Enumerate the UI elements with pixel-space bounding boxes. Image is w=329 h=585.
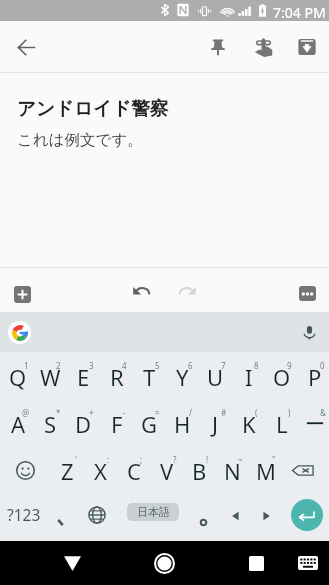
button[interactable]: W	[32, 353, 65, 399]
staticText: Q	[9, 362, 27, 392]
staticText: これは例文です。	[17, 130, 143, 150]
staticText: 6	[188, 360, 193, 371]
staticText: H	[174, 409, 191, 439]
button[interactable]: F	[98, 400, 131, 446]
staticText: 5	[155, 360, 160, 371]
button[interactable]: R	[98, 353, 131, 399]
button[interactable]: U	[197, 353, 230, 399]
button[interactable]: K	[230, 400, 263, 446]
staticText: 日本語	[137, 505, 170, 519]
staticText: X	[94, 456, 107, 486]
button[interactable]: S	[32, 400, 65, 446]
button[interactable]: Enter	[282, 493, 329, 539]
staticText: Y	[176, 362, 189, 392]
button[interactable]: P	[296, 353, 329, 399]
staticText: 8	[254, 360, 259, 371]
staticText: B	[192, 456, 207, 486]
staticText: 0	[320, 360, 325, 371]
staticText: (	[255, 407, 258, 418]
staticText: '	[75, 454, 77, 465]
button[interactable]: G	[131, 400, 164, 446]
button[interactable]: Redo	[169, 272, 205, 308]
button[interactable]: Archive	[287, 27, 327, 67]
staticText: 7	[221, 360, 226, 371]
button[interactable]: Recent apps	[232, 541, 280, 585]
button[interactable]: Switch keyboard	[288, 541, 329, 585]
staticText: E	[77, 362, 90, 392]
staticText: )	[288, 407, 291, 418]
button[interactable]: A	[0, 400, 32, 446]
button[interactable]: Q	[0, 353, 32, 399]
staticText: K	[242, 409, 256, 439]
staticText: R	[110, 362, 124, 392]
staticText: ?123	[7, 504, 41, 525]
button[interactable]: Y	[164, 353, 197, 399]
button[interactable]: Move cursor left	[219, 493, 251, 539]
staticText: 9	[287, 360, 292, 371]
staticText: 2	[56, 360, 61, 371]
staticText: W	[40, 362, 61, 392]
staticText: V	[160, 456, 174, 486]
staticText: /	[189, 407, 192, 418]
button[interactable]: J	[197, 400, 230, 446]
button[interactable]: Backspace	[280, 447, 329, 493]
button[interactable]: N	[214, 447, 247, 493]
button[interactable]: Space	[115, 493, 191, 539]
staticText: Z	[61, 456, 74, 486]
staticText: &	[320, 407, 326, 418]
staticText: O	[273, 362, 291, 392]
staticText: G	[141, 409, 158, 439]
button[interactable]: Reminder	[243, 27, 283, 67]
staticText: !	[206, 454, 209, 465]
staticText: A	[11, 409, 26, 439]
button[interactable]: More options	[290, 276, 324, 310]
button[interactable]: ?123	[0, 493, 47, 539]
button[interactable]: E	[65, 353, 98, 399]
staticText: #	[221, 407, 227, 418]
staticText: ~	[238, 454, 243, 465]
button[interactable]: I	[230, 353, 263, 399]
staticText: :	[107, 454, 110, 465]
staticText: 7:04 PM	[273, 3, 326, 22]
button[interactable]: X	[82, 447, 115, 493]
staticText: アンドロイド警察	[17, 97, 169, 120]
button[interactable]: Change keyboard language	[79, 493, 115, 539]
staticText: -	[123, 407, 126, 418]
staticText: *	[56, 407, 61, 418]
button[interactable]: Navigate up	[6, 27, 46, 67]
button[interactable]: Undo	[124, 272, 160, 308]
button[interactable]: H	[164, 400, 197, 446]
button[interactable]: T	[131, 353, 164, 399]
button[interactable]: Pin note	[198, 27, 238, 67]
staticText: 3	[89, 360, 94, 371]
button[interactable]: V	[148, 447, 181, 493]
staticText: D	[75, 409, 92, 439]
button[interactable]: Move cursor right	[251, 493, 282, 539]
button[interactable]: O	[263, 353, 296, 399]
staticText: ?	[173, 454, 177, 465]
button[interactable]	[47, 493, 73, 539]
button[interactable]: Voice input	[296, 319, 322, 345]
staticText: +	[89, 407, 94, 418]
button[interactable]: Emoji	[0, 447, 49, 493]
staticText: M	[256, 456, 276, 486]
button[interactable]: ー	[296, 400, 329, 446]
button[interactable]: L	[263, 400, 296, 446]
staticText: N	[224, 456, 241, 486]
button[interactable]: Z	[49, 447, 82, 493]
staticText: F	[111, 409, 123, 439]
staticText: ー	[305, 412, 325, 437]
button[interactable]: D	[65, 400, 98, 446]
button[interactable]: C	[115, 447, 148, 493]
staticText: T	[143, 362, 156, 392]
button[interactable]: Add	[5, 277, 39, 311]
staticText: S	[44, 409, 57, 439]
staticText: P	[308, 362, 322, 392]
button[interactable]: Google search	[8, 321, 31, 344]
button[interactable]: Back	[48, 541, 96, 585]
button[interactable]: B	[181, 447, 214, 493]
button[interactable]: Home	[140, 541, 188, 585]
staticText: J	[212, 409, 219, 439]
button[interactable]	[191, 493, 215, 539]
button[interactable]: M	[247, 447, 280, 493]
